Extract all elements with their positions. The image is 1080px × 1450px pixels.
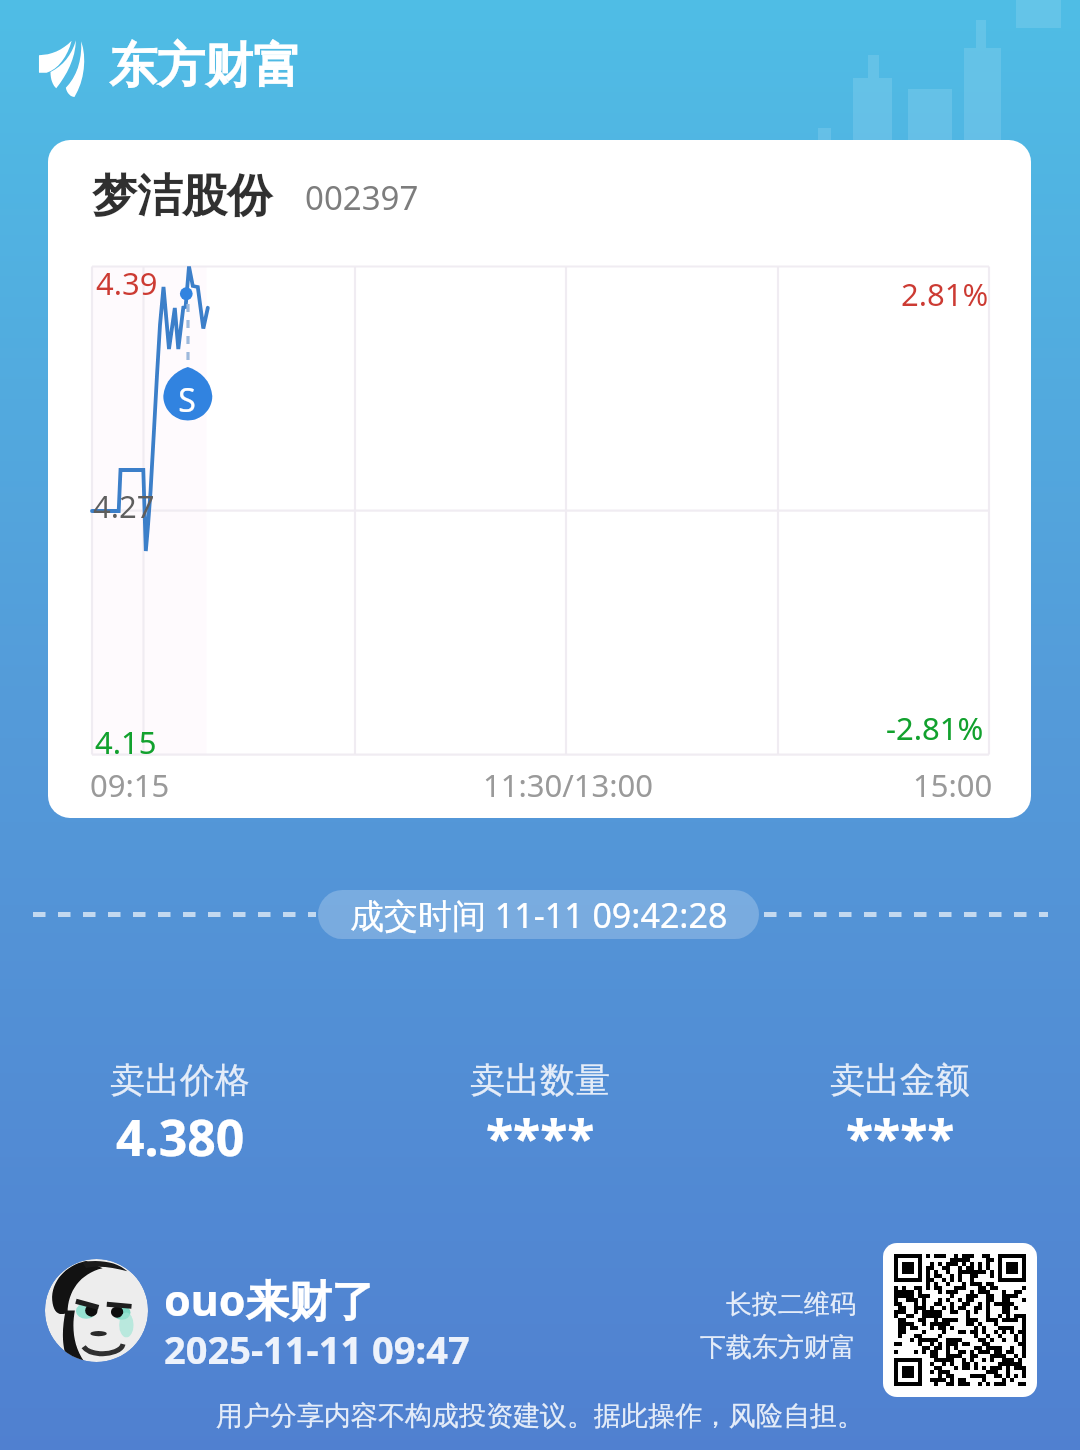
staticText: S <box>157 378 217 422</box>
staticText: 002397 <box>305 175 419 220</box>
staticText: 2.81% <box>901 273 989 315</box>
staticText: 4.27 <box>93 485 155 527</box>
staticText: ouo来财了 <box>164 1270 375 1329</box>
staticText: 下载东方财富 <box>700 1331 856 1364</box>
staticText: 4.380 <box>116 1103 245 1171</box>
staticText: 长按二维码 <box>726 1288 856 1321</box>
staticText: 梦洁股份 <box>92 168 272 225</box>
button[interactable]: 东方财富 <box>38 36 301 99</box>
staticText: 15:00 <box>913 764 993 806</box>
staticText: -2.81% <box>886 707 984 749</box>
button[interactable]: ouo来财了 <box>164 1270 470 1381</box>
button[interactable]: QR code to download East Money app <box>883 1243 1037 1397</box>
staticText: 卖出价格 <box>110 1058 250 1102</box>
staticText: 卖出数量 <box>470 1058 610 1102</box>
staticText: **** <box>486 1103 595 1171</box>
staticText: 成交时间 11-11 09:42:28 <box>350 892 728 938</box>
staticText: 东方财富 <box>109 36 301 96</box>
staticText: 卖出金额 <box>830 1058 970 1102</box>
staticText: 2025-11-11 09:47 <box>164 1323 470 1375</box>
button[interactable]: 梦洁股份 <box>48 140 1031 818</box>
staticText: **** <box>846 1103 955 1171</box>
staticText: 4.15 <box>95 721 157 763</box>
staticText: 09:15 <box>90 764 170 806</box>
button[interactable]: 长按二维码 <box>656 1288 856 1364</box>
staticText: 4.39 <box>96 262 158 304</box>
button[interactable]: 成交时间 11-11 09:42:28 <box>318 890 759 939</box>
staticText: 用户分享内容不构成投资建议。据此操作，风险自担。 <box>0 1399 1080 1433</box>
staticText: 11:30/13:00 <box>483 764 654 806</box>
button[interactable]: User avatar <box>45 1259 148 1362</box>
